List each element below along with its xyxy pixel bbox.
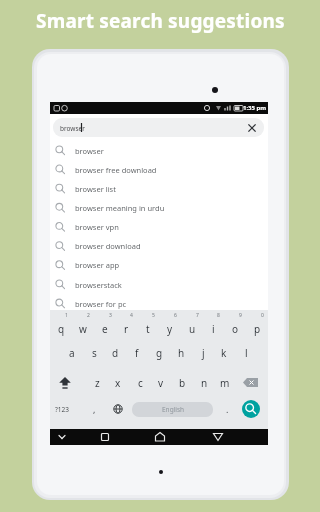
staticText: browser free download <box>75 165 157 175</box>
staticText: browser list <box>75 184 116 194</box>
staticText: k <box>221 346 227 360</box>
staticText: ?123 <box>55 405 69 414</box>
staticText: , <box>93 403 96 415</box>
staticText: 8 <box>217 312 220 319</box>
staticText: l <box>245 346 248 360</box>
staticText: browser for pc <box>75 299 127 309</box>
staticText: browserstack <box>75 280 122 290</box>
staticText: e <box>102 322 108 336</box>
staticText: browser <box>75 146 104 156</box>
staticText: x <box>115 376 121 390</box>
staticText: 6 <box>174 312 177 319</box>
staticText: s <box>92 346 97 360</box>
staticText: w <box>79 322 87 336</box>
staticText: browser download <box>75 241 141 251</box>
staticText: t <box>146 322 150 336</box>
staticText: 0 <box>261 312 264 319</box>
staticText: q <box>58 322 65 336</box>
staticText: z <box>95 376 100 390</box>
staticText: d <box>112 346 119 360</box>
staticText: 3 <box>109 312 112 319</box>
staticText: n <box>201 376 208 390</box>
staticText: 1 <box>65 312 68 319</box>
staticText: 4 <box>130 312 133 319</box>
staticText: c <box>138 376 143 390</box>
staticText: o <box>232 322 239 336</box>
staticText: browser <box>60 124 85 133</box>
staticText: f <box>135 346 139 360</box>
staticText: b <box>179 376 186 390</box>
staticText: English <box>162 405 185 414</box>
staticText: . <box>226 403 229 415</box>
staticText: 1:35 pm <box>243 104 267 112</box>
staticText: 5 <box>152 312 155 319</box>
staticText: p <box>254 322 261 336</box>
staticText: 2 <box>87 312 90 319</box>
staticText: g <box>156 346 163 360</box>
staticText: 7 <box>196 312 199 319</box>
staticText: browser app <box>75 260 120 270</box>
staticText: browser vpn <box>75 222 119 232</box>
staticText: 9 <box>239 312 242 319</box>
staticText: browser meaning in urdu <box>75 203 165 213</box>
staticText: y <box>167 322 173 336</box>
staticText: r <box>124 322 129 336</box>
staticText: v <box>158 376 164 390</box>
staticText: a <box>69 346 75 360</box>
staticText: i <box>212 322 215 336</box>
staticText: m <box>220 376 230 390</box>
staticText: Smart search suggestions <box>36 8 285 34</box>
staticText: h <box>178 346 185 360</box>
staticText: u <box>189 322 196 336</box>
staticText: j <box>202 346 205 360</box>
